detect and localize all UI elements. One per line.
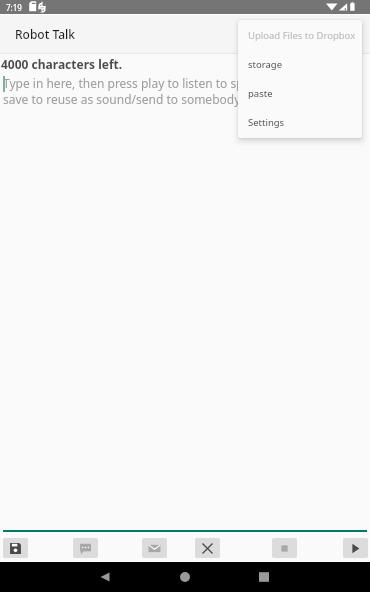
staticText: paste	[248, 87, 273, 100]
button[interactable]: paste	[238, 79, 362, 108]
button[interactable]: Back	[91, 562, 119, 592]
button[interactable]: Close	[195, 538, 220, 558]
button[interactable]: Upload Files to Dropbox	[238, 21, 362, 50]
staticText: Type in here, then press play to listen …	[3, 75, 370, 107]
staticText: 7:19	[6, 2, 22, 13]
button[interactable]: Settings	[238, 108, 362, 137]
button[interactable]: Save	[3, 538, 28, 558]
staticText: storage	[248, 58, 282, 71]
button[interactable]: storage	[238, 50, 362, 79]
button[interactable]: Recents	[250, 562, 278, 592]
button[interactable]: Message	[73, 538, 98, 558]
staticText: Settings	[248, 116, 285, 129]
button[interactable]: Email	[142, 538, 167, 558]
staticText: Robot Talk	[15, 26, 76, 42]
button[interactable]: Play	[343, 538, 368, 558]
staticText: 4000 characters left.	[1, 56, 123, 72]
button[interactable]: Home	[171, 562, 199, 592]
button[interactable]: Stop	[272, 538, 297, 558]
staticText: Upload Files to Dropbox	[248, 29, 356, 42]
button[interactable]: Type in here, then press play to listen …	[0, 75, 370, 592]
